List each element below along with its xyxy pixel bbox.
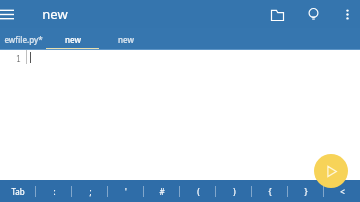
staticText: < [340, 186, 345, 197]
staticText: ( [197, 186, 200, 197]
staticText: : [53, 186, 56, 197]
staticText: # [159, 186, 165, 197]
staticText: ) [233, 186, 236, 197]
staticText: 1 [16, 53, 21, 64]
button[interactable]: # [144, 180, 180, 202]
button[interactable]: } [288, 180, 324, 202]
button[interactable]: Open navigation drawer [0, 2, 18, 26]
staticText: ' [125, 186, 127, 197]
button[interactable]: { [252, 180, 288, 202]
button[interactable]: More options [336, 3, 358, 25]
button[interactable]: Hints [302, 3, 324, 25]
staticText: Tab [11, 186, 25, 197]
button[interactable]: ewfile.py* [0, 28, 46, 50]
button[interactable]: ; [72, 180, 108, 202]
button[interactable]: Tab [0, 180, 36, 202]
button[interactable]: : [36, 180, 72, 202]
button[interactable]: ( [180, 180, 216, 202]
staticText: ewfile.py* [4, 34, 43, 45]
staticText: new [118, 34, 134, 45]
button[interactable]: new [46, 28, 99, 50]
staticText: ; [89, 186, 92, 197]
button[interactable]: ) [216, 180, 252, 202]
button[interactable]: Run [314, 154, 348, 188]
button[interactable]: ' [108, 180, 144, 202]
staticText: new [42, 5, 68, 23]
button[interactable]: < [324, 180, 360, 202]
button[interactable]: new [99, 28, 152, 50]
staticText: { [268, 186, 272, 197]
button[interactable]: Open folder [266, 3, 288, 25]
staticText: } [304, 186, 308, 197]
staticText: new [65, 34, 81, 45]
